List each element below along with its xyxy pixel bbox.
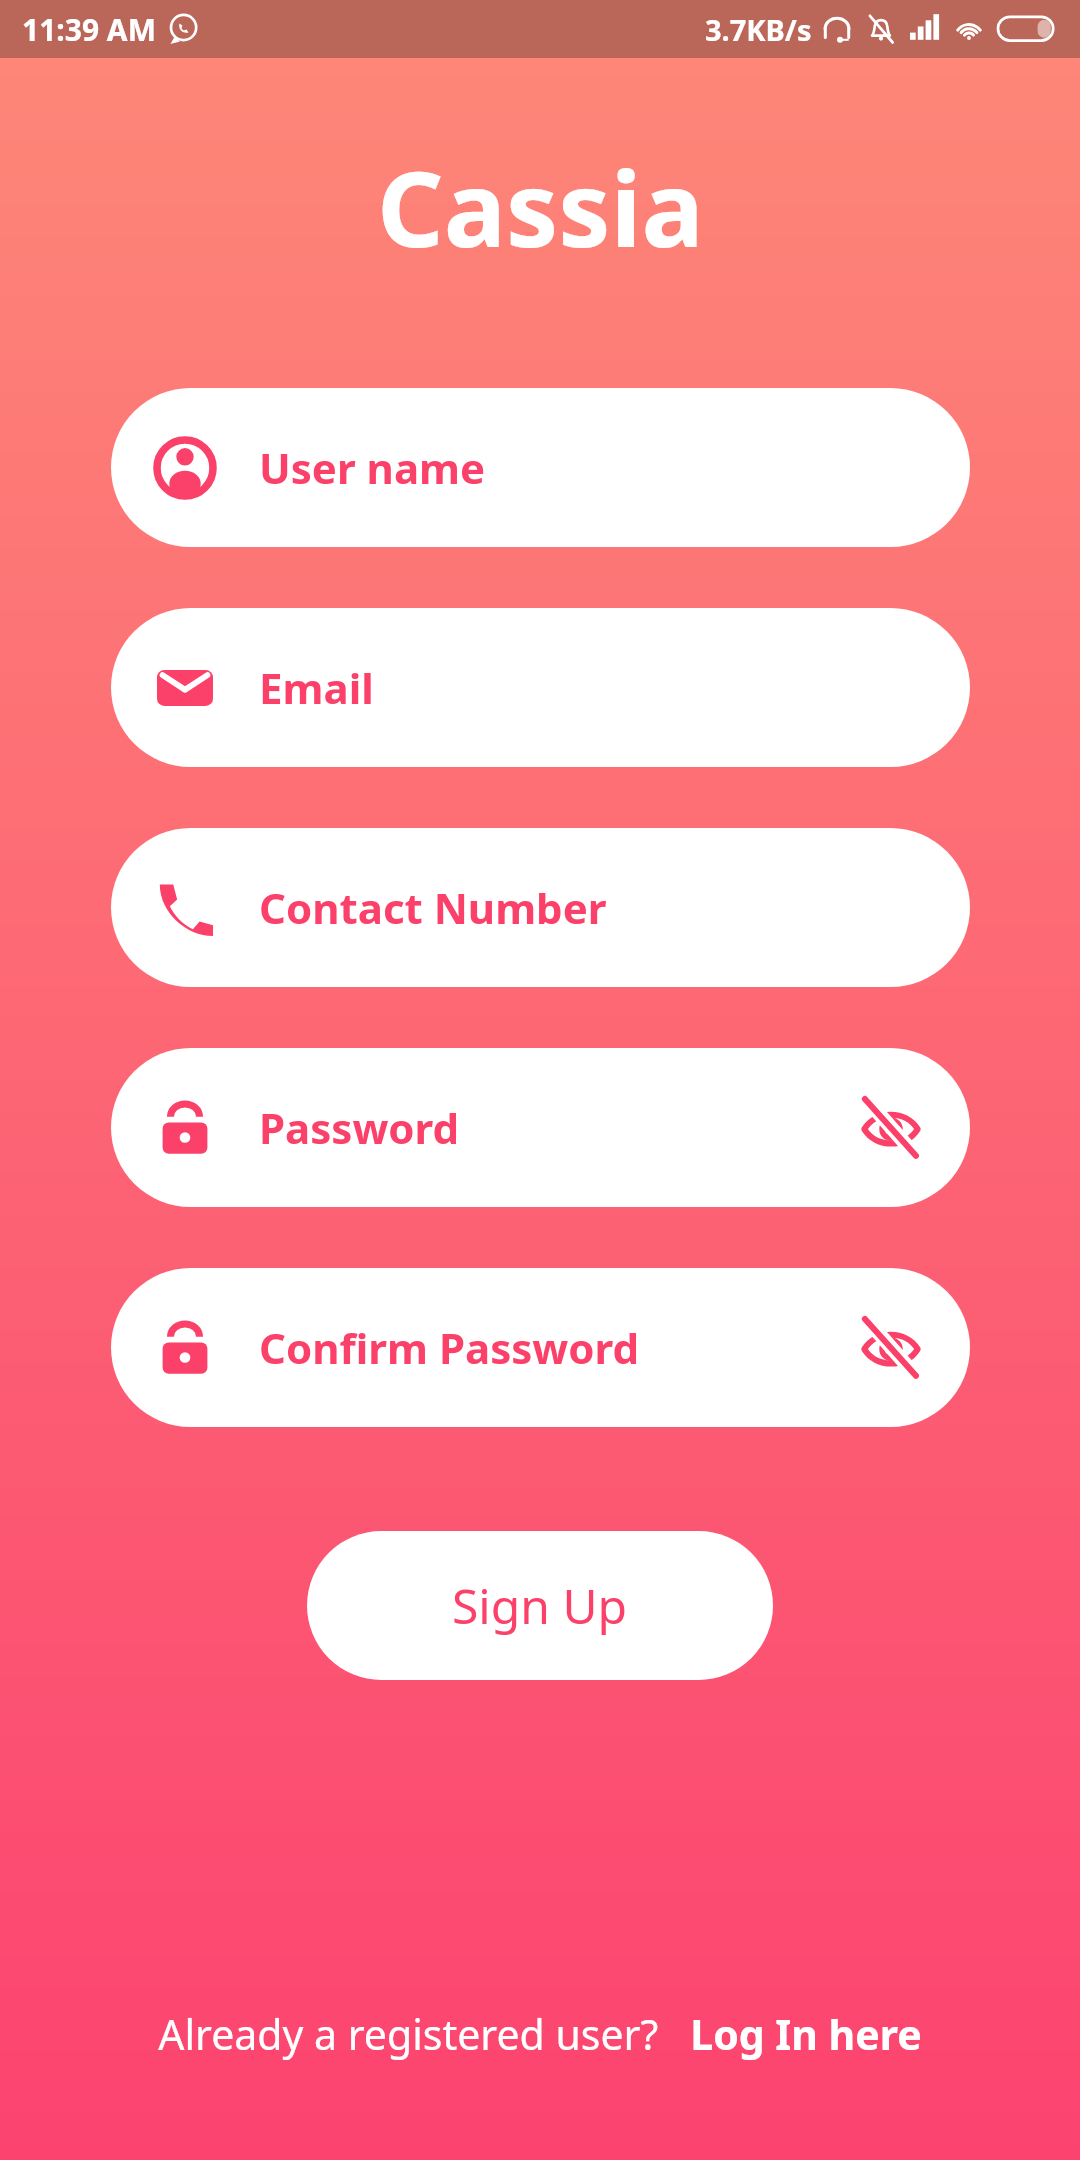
staticText: 11:39 AM [22, 9, 156, 50]
button[interactable]: Email [111, 608, 970, 767]
button[interactable]: User name [111, 388, 970, 547]
button[interactable]: Sign Up [307, 1531, 773, 1680]
staticText: Contact Number [259, 879, 607, 936]
staticText: Confirm Password [259, 1319, 640, 1376]
staticText: 3.7KB/s [705, 10, 812, 49]
staticText: Cassia [377, 136, 704, 278]
button[interactable]: Confirm Password [111, 1268, 970, 1427]
button[interactable]: Contact Number [111, 828, 970, 987]
staticText: Already a registered user? Log In here [158, 2006, 922, 2062]
button[interactable]: Show password [856, 1313, 926, 1383]
staticText: Email [259, 659, 374, 716]
staticText: Sign Up [452, 1573, 628, 1638]
button[interactable]: Already a registered user? Log In here [0, 2006, 1080, 2160]
staticText: Password [259, 1099, 460, 1156]
button[interactable]: Password [111, 1048, 970, 1207]
staticText: User name [259, 439, 486, 496]
button[interactable]: Show password [856, 1093, 926, 1163]
